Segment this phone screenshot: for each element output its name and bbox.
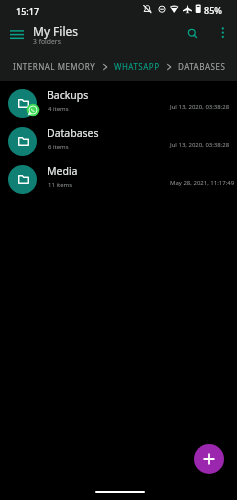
staticText: My Files [33,23,79,39]
staticText: 3 folders [33,37,61,46]
staticText: Databases [47,126,99,140]
staticText: Jul 13, 2020, 03:38:28 [170,141,230,149]
staticText: 6 items [48,143,69,151]
staticText: INTERNAL MEMORY [13,61,96,72]
staticText: May 28, 2021, 11:17:49 [170,179,235,187]
staticText: Media [47,164,78,178]
button[interactable]: Media [0,161,237,199]
staticText: DATABASES [178,61,226,72]
button[interactable]: More options [211,22,235,52]
staticText: 15:17 [16,5,40,17]
button[interactable]: Search [180,22,205,52]
staticText: 85% [204,4,222,16]
button[interactable]: Menu [3,23,29,51]
button[interactable]: Backups [0,85,237,123]
staticText: 4 items [48,105,69,113]
staticText: Jul 13, 2020, 03:38:28 [170,103,230,111]
staticText: 11 items [48,181,73,189]
button[interactable]: Add [194,444,224,474]
staticText: WHATSAPP [114,61,160,72]
staticText: Backups [47,88,89,102]
button[interactable]: Databases [0,123,237,161]
